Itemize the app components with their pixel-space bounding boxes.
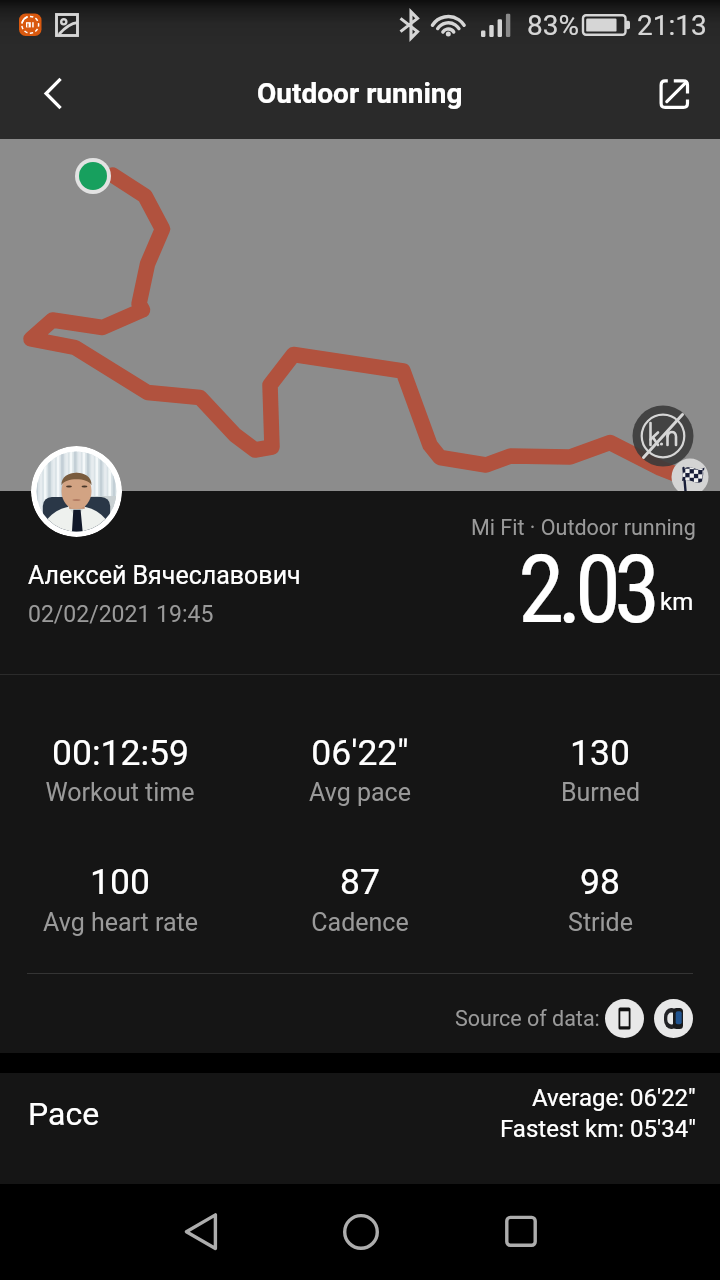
- button[interactable]: Back: [0, 48, 91, 139]
- staticText: 83%: [527, 9, 579, 42]
- staticText: Source of data:: [455, 1006, 600, 1031]
- staticText: 87: [340, 861, 380, 903]
- staticText: Burned: [561, 778, 640, 807]
- staticText: Mi Fit · Outdoor running: [471, 515, 696, 540]
- staticText: Cadence: [311, 908, 409, 937]
- staticText: km: [660, 588, 694, 616]
- staticText: Stride: [568, 908, 633, 937]
- button[interactable]: Phone data source: [605, 999, 644, 1038]
- staticText: 98: [580, 861, 620, 903]
- staticText: Avg pace: [309, 778, 411, 807]
- staticText: 06'22": [311, 732, 409, 774]
- staticText: 21:13: [637, 9, 707, 42]
- staticText: Avg heart rate: [43, 908, 198, 937]
- button[interactable]: Pace: [0, 1073, 720, 1184]
- staticText: 2.03: [518, 535, 654, 645]
- staticText: Outdoor running: [257, 77, 463, 110]
- staticText: 00:12:59: [52, 732, 189, 774]
- staticText: Pace: [28, 1095, 100, 1133]
- staticText: 130: [570, 732, 630, 774]
- button[interactable]: Share: [629, 48, 720, 139]
- staticText: Workout time: [45, 778, 195, 807]
- staticText: 100: [90, 861, 150, 903]
- staticText: Average: 06'22": [532, 1084, 696, 1112]
- staticText: Fastest km: 05'34": [500, 1115, 696, 1143]
- button[interactable]: Back: [153, 1184, 249, 1280]
- staticText: 02/02/2021 19:45: [28, 601, 214, 628]
- button[interactable]: Profile photo: [31, 446, 122, 537]
- button[interactable]: Recents: [473, 1184, 569, 1280]
- button[interactable]: Band data source: [654, 999, 693, 1038]
- button[interactable]: Home: [313, 1184, 409, 1280]
- staticText: Алексей Вячеславович: [28, 561, 301, 590]
